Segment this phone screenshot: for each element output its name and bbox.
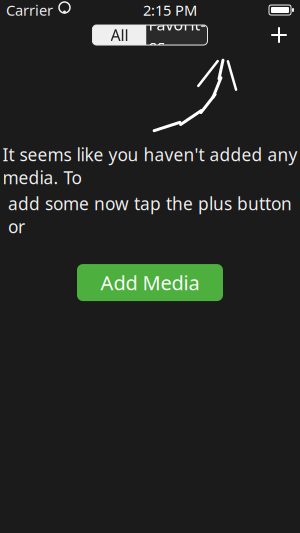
staticText: add some now tap the plus button or xyxy=(8,192,292,238)
staticText: Carrier xyxy=(6,0,53,20)
staticText: Add Media xyxy=(100,269,199,296)
staticText: 2:15 PM xyxy=(143,0,197,20)
staticText: Favorites xyxy=(148,14,205,56)
staticText: All xyxy=(110,24,128,46)
button[interactable]: Add xyxy=(262,20,296,50)
staticText: It seems like you haven't added any medi… xyxy=(2,143,297,189)
button[interactable]: Add Media xyxy=(77,264,223,301)
button[interactable]: Favorites xyxy=(146,25,207,45)
button[interactable]: All xyxy=(92,25,146,45)
